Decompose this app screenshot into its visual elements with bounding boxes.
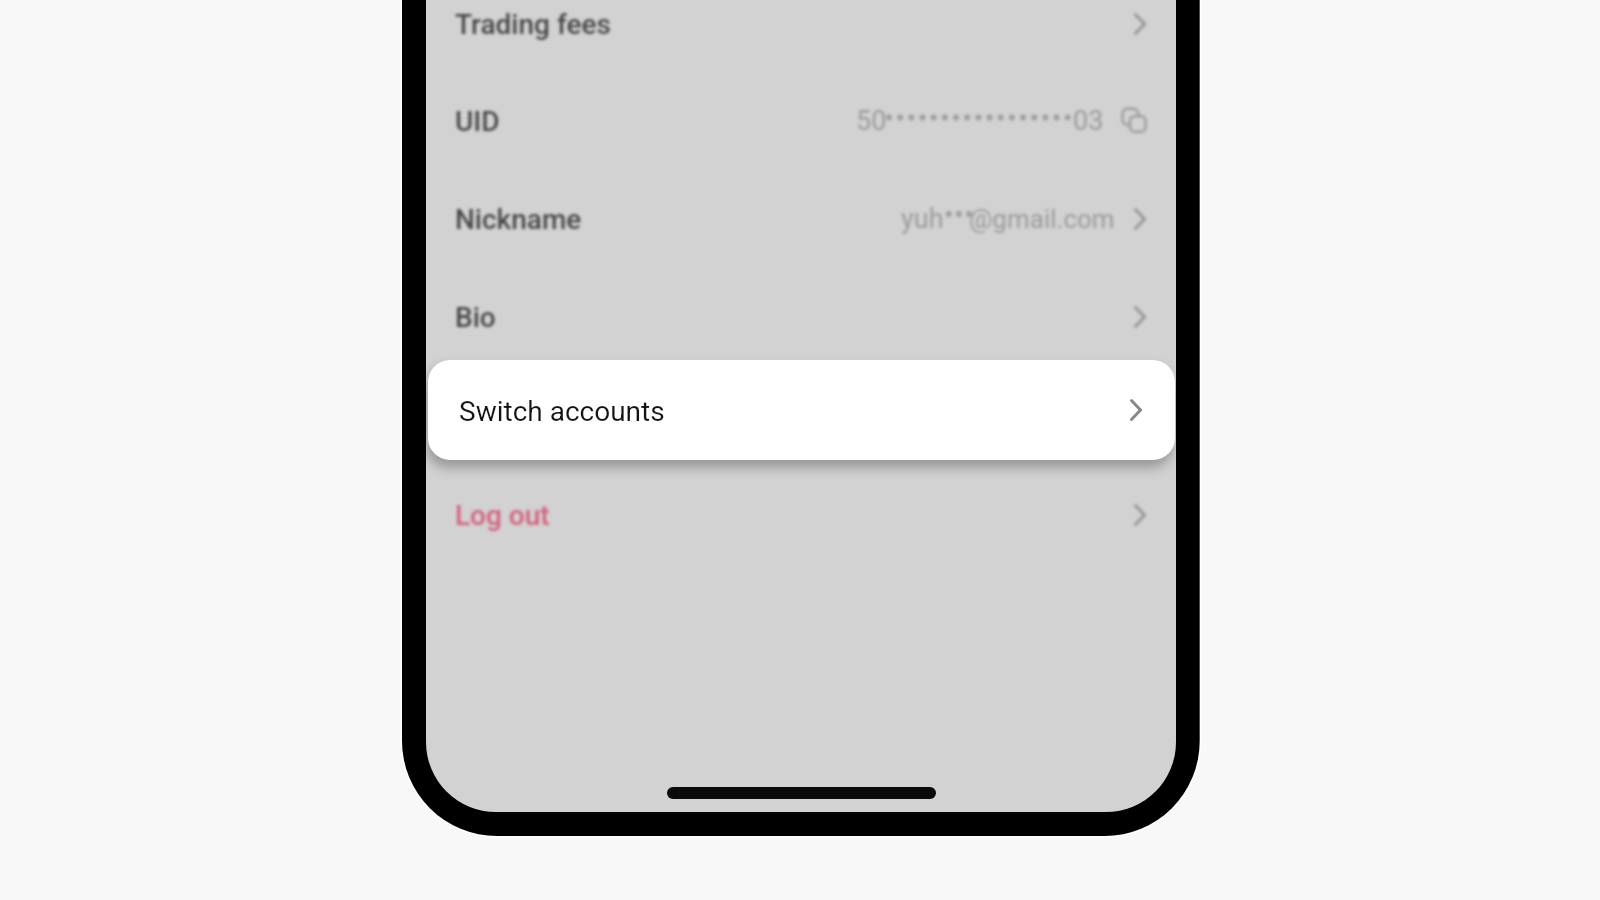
button[interactable]: Switch accounts: [428, 360, 1175, 460]
staticText: Bio: [455, 301, 496, 334]
button[interactable]: UID: [426, 72, 1176, 170]
button[interactable]: Trading fees: [426, 0, 1176, 73]
staticText: 50: [856, 105, 887, 137]
staticText: Switch accounts: [455, 393, 662, 426]
button[interactable]: Log out: [426, 466, 1176, 564]
staticText: yuh: [901, 203, 944, 235]
button[interactable]: Bio: [426, 268, 1176, 366]
staticText: UID: [455, 105, 500, 138]
staticText: 03: [1073, 105, 1104, 137]
staticText: Log out: [455, 499, 550, 532]
staticText: Trading fees: [455, 8, 611, 41]
button[interactable]: Nickname: [426, 170, 1176, 268]
button[interactable]: Copy UID: [1118, 105, 1150, 137]
staticText: Nickname: [455, 203, 582, 236]
staticText: @gmail.com: [969, 204, 1115, 234]
staticText: Switch accounts: [459, 395, 665, 428]
button[interactable]: Switch accounts: [426, 360, 1176, 458]
